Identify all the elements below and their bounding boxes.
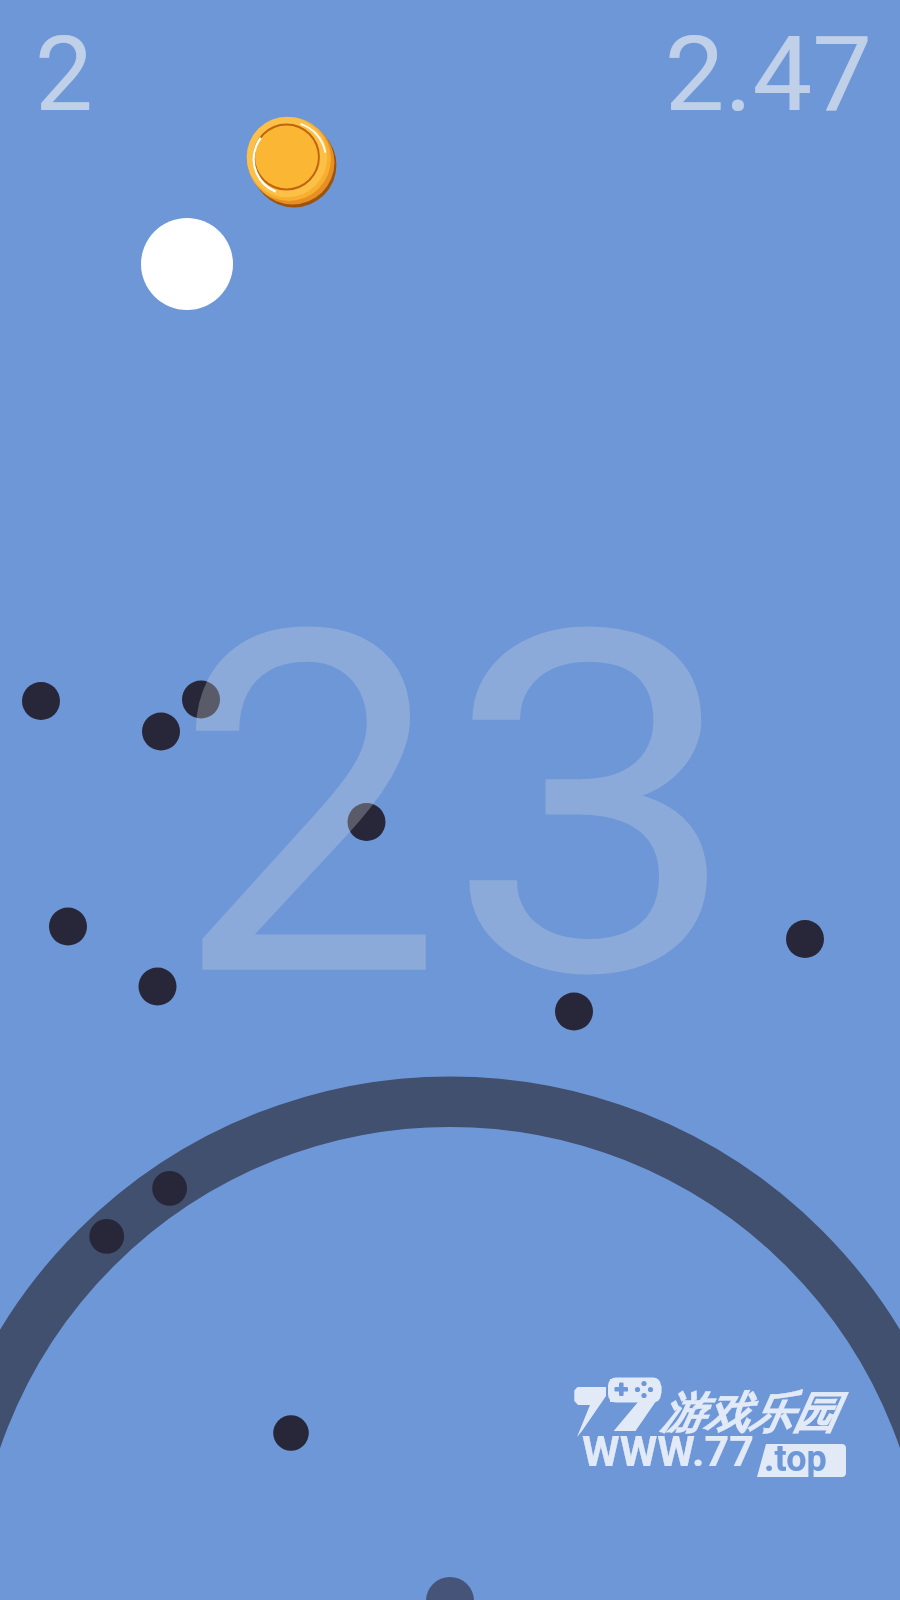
button[interactable]: Tap to bounce the ball — [0, 0, 900, 1600]
